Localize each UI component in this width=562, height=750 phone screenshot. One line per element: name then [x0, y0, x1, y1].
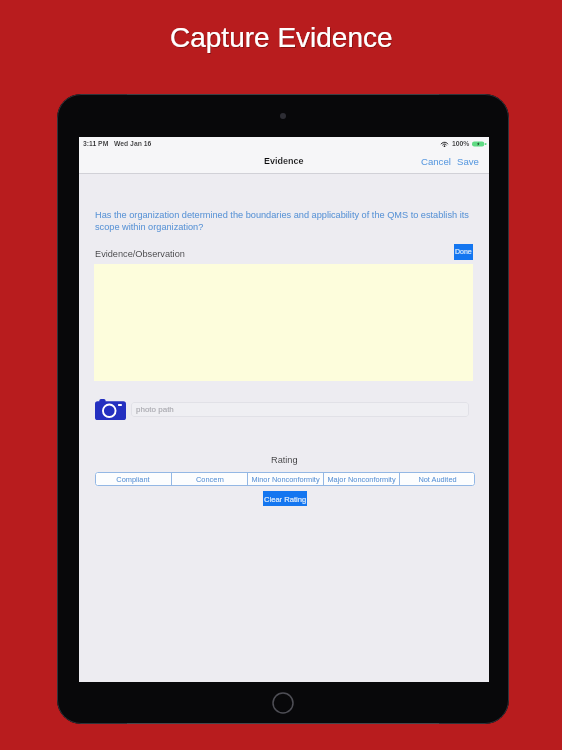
- button[interactable]: photo path: [131, 402, 469, 417]
- button[interactable]: Done: [454, 244, 473, 260]
- staticText: Not Audited: [418, 475, 457, 483]
- staticText: Wed Jan 16: [114, 140, 152, 148]
- staticText: Done: [455, 248, 472, 256]
- button[interactable]: Major Nonconformity: [324, 472, 399, 486]
- staticText: Concern: [196, 475, 224, 483]
- staticText: Save: [457, 156, 479, 167]
- button[interactable]: Not Audited: [400, 472, 475, 486]
- button[interactable]: Compliant: [95, 472, 171, 486]
- button[interactable]: Cancel: [420, 154, 452, 169]
- staticText: 3:11 PM: [83, 140, 109, 148]
- staticText: Major Nonconformity: [327, 475, 396, 483]
- button[interactable]: Clear Rating: [263, 491, 307, 506]
- button[interactable]: Concern: [172, 472, 247, 486]
- staticText: Compliant: [116, 475, 150, 483]
- button[interactable]: Save: [456, 154, 480, 169]
- button[interactable]: Minor Nonconformity: [248, 472, 323, 486]
- staticText: Capture Evidence: [170, 22, 393, 53]
- staticText: 100%: [452, 140, 470, 148]
- staticText: Evidence: [264, 156, 304, 166]
- button[interactable]: Take photo: [95, 399, 126, 420]
- staticText: Clear Rating: [264, 495, 307, 503]
- staticText: Rating: [271, 455, 298, 465]
- staticText: Has the organization determined the boun…: [95, 210, 475, 232]
- staticText: Evidence/Observation: [95, 249, 185, 259]
- staticText: Capture Evidence: [171, 23, 394, 54]
- staticText: photo path: [136, 405, 174, 414]
- staticText: Cancel: [421, 156, 451, 167]
- staticText: Minor Nonconformity: [251, 475, 320, 483]
